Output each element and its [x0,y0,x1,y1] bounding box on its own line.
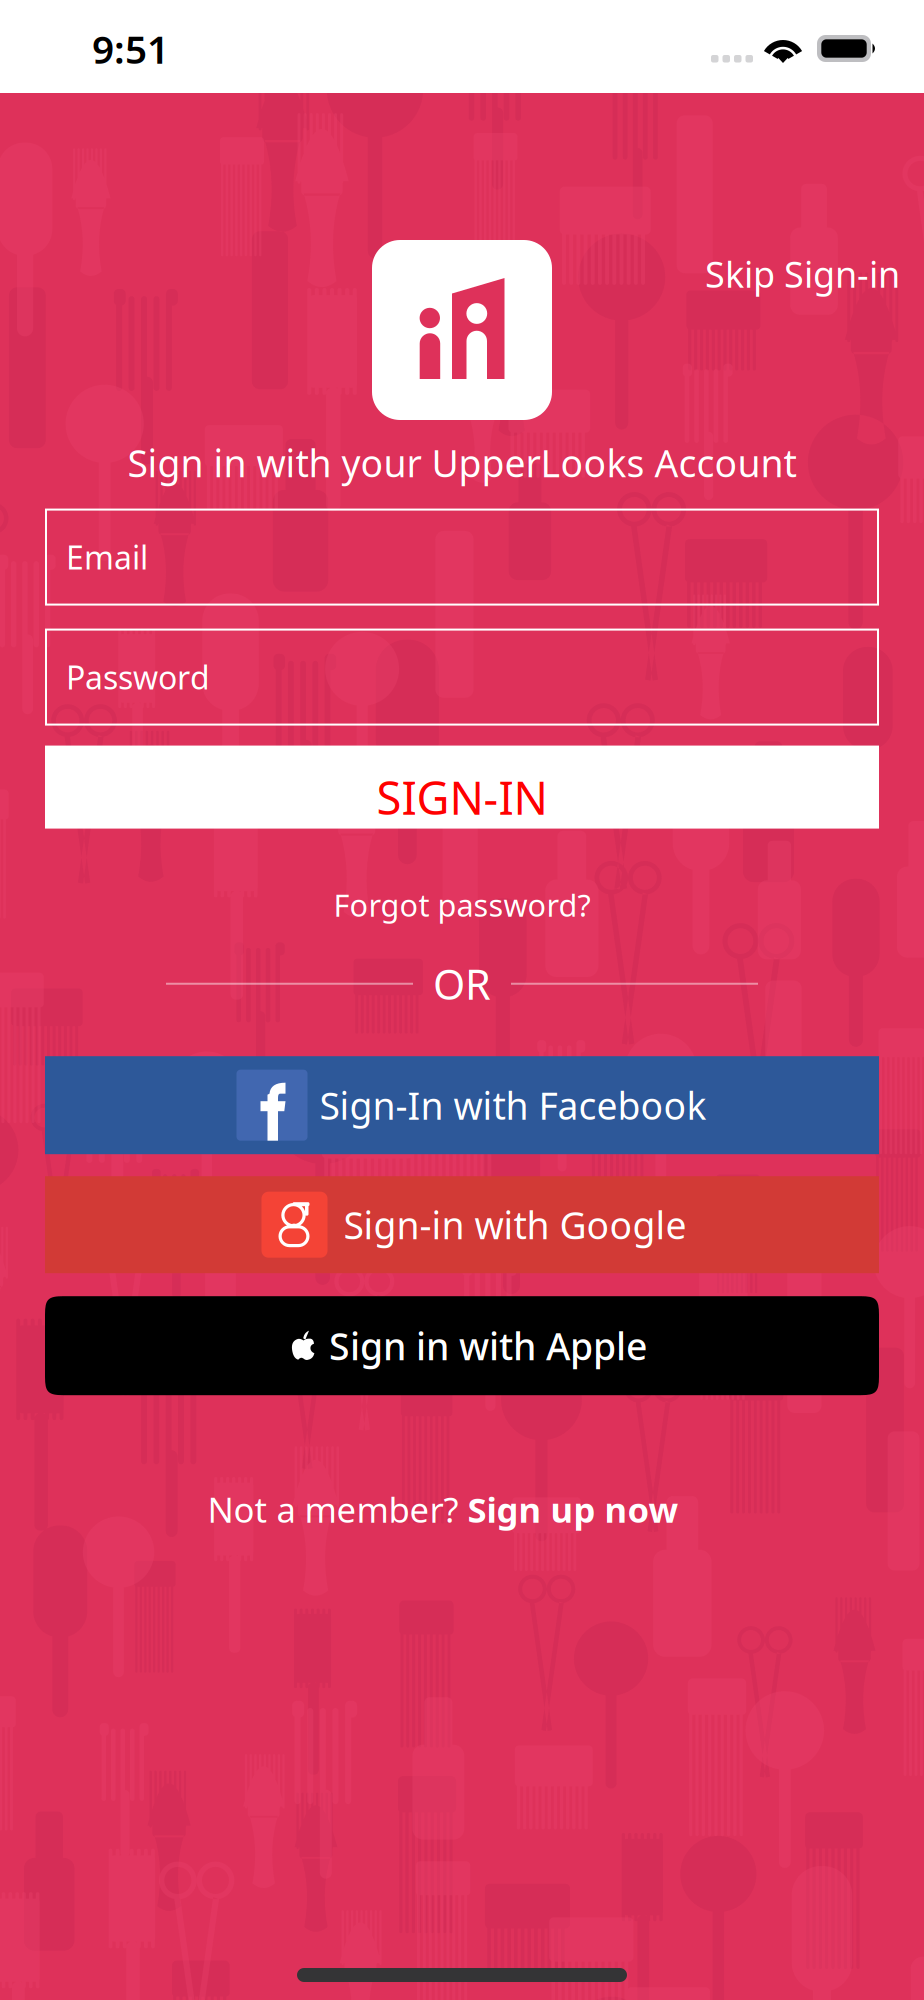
button[interactable]: Sign-In with Facebook [45,1056,879,1154]
staticText: 9:51 [92,23,169,74]
staticText: OR [433,956,491,1011]
staticText: Password [66,656,210,698]
button[interactable]: Skip Sign-in [705,250,900,298]
staticText: Forgot password? [333,885,590,925]
button[interactable]: SIGN-IN [45,746,879,829]
button[interactable]: Forgot password? [333,879,590,931]
button[interactable]: Email [45,509,879,606]
staticText: Sign up now [467,1486,678,1532]
button[interactable]: Sign in with Apple [45,1296,879,1395]
staticText: SIGN-IN [376,767,547,827]
button[interactable]: Sign-in with Google [45,1176,879,1273]
staticText: Sign-in with Google [343,1200,686,1249]
staticText: Email [66,536,148,578]
staticText: Skip Sign-in [705,250,900,298]
staticText: Not a member? [207,1486,467,1532]
staticText: Sign-In with Facebook [319,1080,706,1130]
staticText: Sign in with Apple [329,1321,647,1370]
staticText: Sign in with your UpperLooks Account [127,438,796,488]
button[interactable]: Not a member? [207,1480,716,1538]
button[interactable]: Password [45,629,879,726]
